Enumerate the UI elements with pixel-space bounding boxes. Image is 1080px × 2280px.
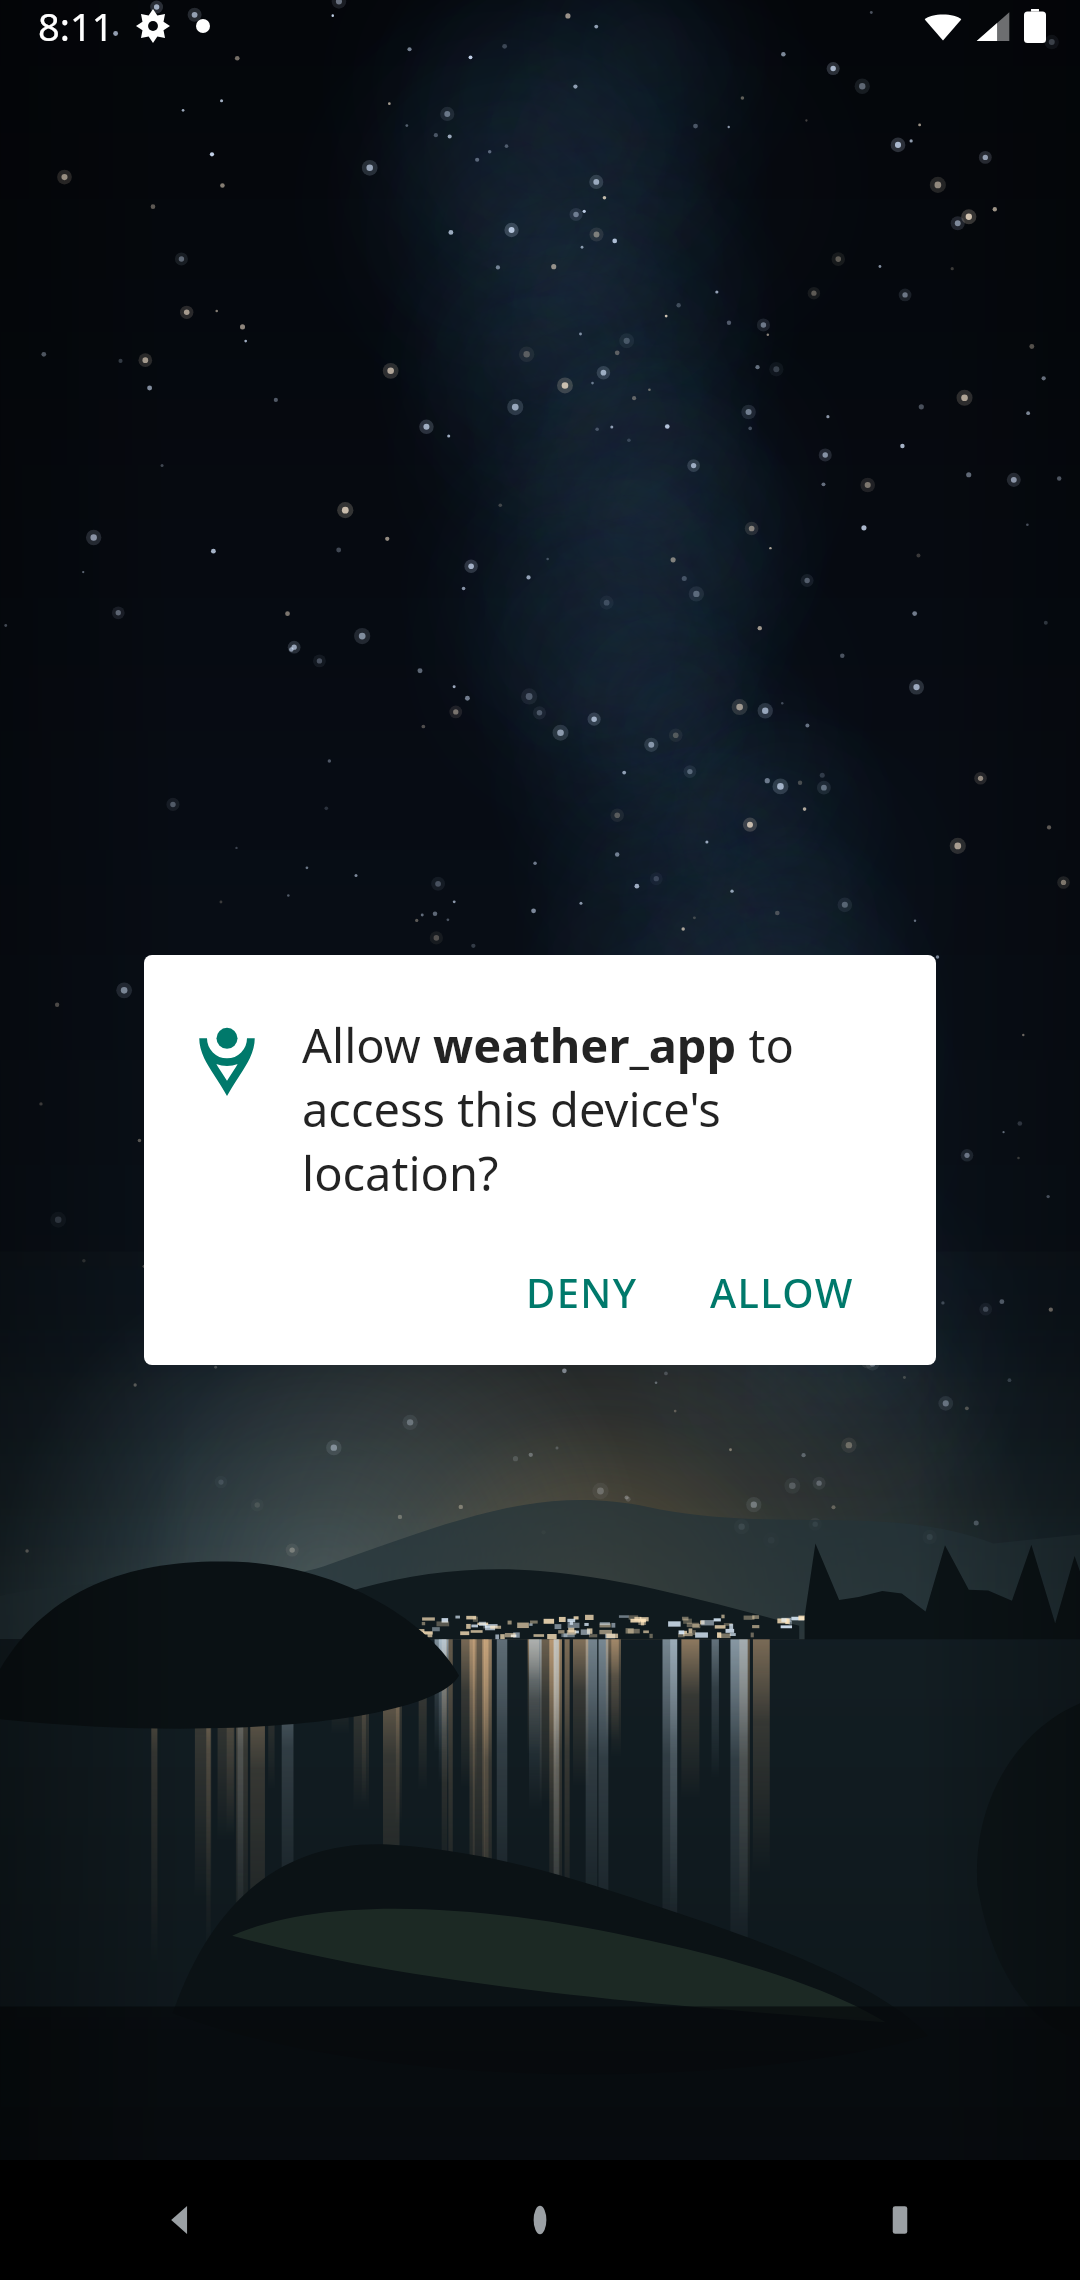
button[interactable]: ALLOW <box>686 1243 878 1341</box>
button[interactable]: DENY <box>502 1243 662 1341</box>
staticText: 8:11 <box>38 0 114 52</box>
button[interactable]: Back <box>0 2160 360 2280</box>
staticText: Allow weather_app to access this device'… <box>302 1013 888 1205</box>
staticText: ALLOW <box>710 1265 854 1319</box>
staticText: DENY <box>526 1265 638 1319</box>
button[interactable]: Recent apps <box>720 2160 1080 2280</box>
button[interactable]: Home <box>360 2160 720 2280</box>
